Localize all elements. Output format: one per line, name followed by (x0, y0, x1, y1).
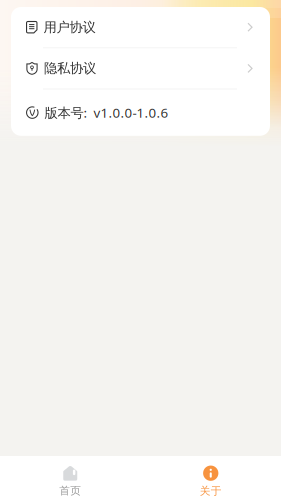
staticText: 关于 (200, 484, 222, 497)
button[interactable]: 隐私协议 (11, 48, 270, 89)
button[interactable]: 用户协议 (11, 7, 270, 47)
staticText: 首页 (59, 484, 81, 497)
staticText: 用户协议 (43, 19, 95, 35)
staticText: 版本号: v1.0.0-1.0.6 (45, 104, 169, 121)
staticText: 隐私协议 (44, 60, 96, 77)
button[interactable]: 关于 (140, 456, 281, 500)
button[interactable]: 首页 (0, 456, 140, 500)
